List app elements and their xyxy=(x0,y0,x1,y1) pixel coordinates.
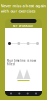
staticText: Your timeline is now filled xyxy=(7,59,36,66)
staticText: MY WORKOUT xyxy=(13,24,34,28)
staticText: Never miss a beat again with our exercis… xyxy=(0,3,46,14)
